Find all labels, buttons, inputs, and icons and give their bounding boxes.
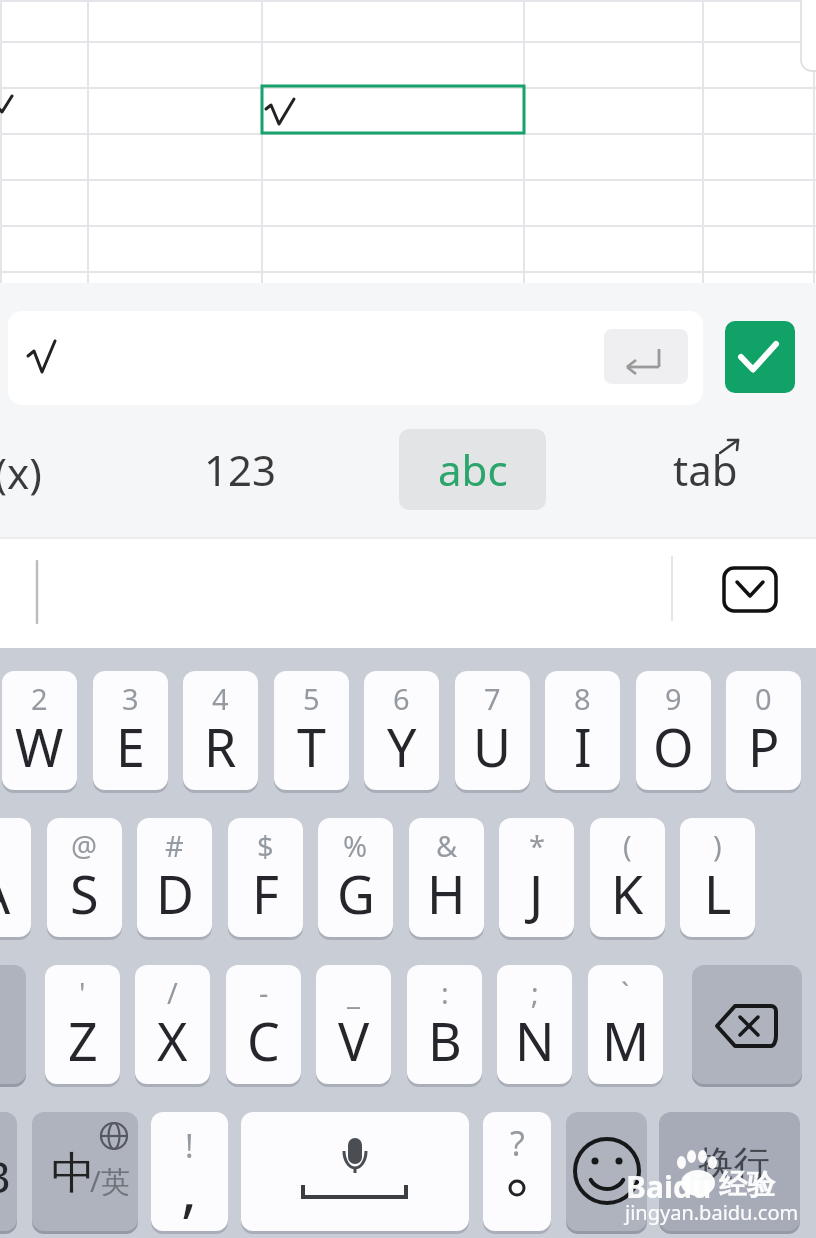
staticText: O xyxy=(653,711,694,782)
button[interactable]: abc xyxy=(399,429,546,510)
button[interactable] xyxy=(566,1112,647,1231)
staticText: C xyxy=(247,1005,280,1076)
staticText: : xyxy=(441,973,449,1012)
button[interactable]: : xyxy=(407,965,482,1084)
button[interactable]: _ xyxy=(316,965,391,1084)
button[interactable]: 6 xyxy=(364,671,439,790)
staticText: Baidu xyxy=(626,1166,712,1207)
staticText: f(x) xyxy=(0,444,42,501)
staticText: 9 xyxy=(665,679,682,718)
button[interactable] xyxy=(724,568,776,611)
button[interactable]: 8 xyxy=(545,671,620,790)
button[interactable]: ) xyxy=(680,818,755,937)
staticText: , xyxy=(181,1147,198,1229)
button[interactable] xyxy=(8,311,703,405)
staticText: Z xyxy=(68,1005,98,1076)
staticText: J xyxy=(529,858,544,929)
button[interactable]: 换行 xyxy=(659,1112,800,1231)
button[interactable] xyxy=(241,1112,469,1231)
button[interactable]: 123 xyxy=(190,430,290,509)
staticText: & xyxy=(436,826,458,865)
staticText: ( xyxy=(623,826,632,865)
staticText: # xyxy=(165,826,184,865)
staticText: N xyxy=(515,1005,555,1076)
staticText: 5 xyxy=(303,679,320,718)
staticText: ) xyxy=(713,826,722,865)
staticText: - xyxy=(259,973,269,1012)
staticText: /英 xyxy=(90,1161,130,1201)
staticText: ` xyxy=(621,973,630,1012)
staticText: X xyxy=(157,1005,188,1076)
staticText: Y xyxy=(387,711,417,782)
staticText: K xyxy=(611,858,644,929)
staticText: ? xyxy=(510,1120,525,1166)
staticText: tab xyxy=(673,441,738,498)
staticText: F xyxy=(252,858,279,929)
staticText: ' xyxy=(79,973,86,1012)
staticText: T xyxy=(297,711,326,782)
staticText: ! xyxy=(185,1124,194,1168)
staticText: ; xyxy=(531,973,539,1012)
staticText: abc xyxy=(438,441,508,498)
button[interactable]: 9 xyxy=(636,671,711,790)
button[interactable] xyxy=(725,321,795,393)
button[interactable]: % xyxy=(318,818,393,937)
button[interactable]: @ xyxy=(47,818,122,937)
staticText: W xyxy=(15,711,64,782)
button[interactable]: / xyxy=(135,965,210,1084)
staticText: 经验 xyxy=(719,1167,775,1202)
button[interactable]: ? xyxy=(483,1112,551,1231)
button[interactable]: 7 xyxy=(455,671,530,790)
staticText: R xyxy=(204,711,237,782)
staticText: jingyan.baidu.com xyxy=(625,1199,799,1226)
button[interactable]: 中 xyxy=(32,1112,138,1231)
staticText: M xyxy=(602,1005,650,1076)
staticText: G xyxy=(337,858,375,929)
button[interactable]: 4 xyxy=(183,671,258,790)
staticText: 6 xyxy=(393,679,410,718)
button[interactable]: - xyxy=(226,965,301,1084)
staticText: B xyxy=(0,1146,11,1206)
staticText: V xyxy=(338,1005,370,1076)
button[interactable]: ` xyxy=(588,965,663,1084)
staticText: I xyxy=(574,711,592,782)
button[interactable]: A xyxy=(0,818,31,937)
staticText: 8 xyxy=(574,679,591,718)
staticText: 0 xyxy=(755,679,772,718)
staticText: @ xyxy=(71,826,98,865)
staticText: / xyxy=(167,973,178,1012)
staticText: 换行 xyxy=(698,1141,770,1186)
button[interactable]: # xyxy=(137,818,212,937)
button[interactable] xyxy=(692,965,802,1084)
button[interactable]: ! xyxy=(151,1112,228,1231)
staticText: D xyxy=(156,858,194,929)
staticText: 2 xyxy=(31,679,48,718)
staticText: L xyxy=(704,858,732,929)
button[interactable]: * xyxy=(499,818,574,937)
button[interactable]: ' xyxy=(45,965,120,1084)
button[interactable]: ; xyxy=(497,965,572,1084)
button[interactable]: 5 xyxy=(274,671,349,790)
button[interactable]: tab xyxy=(655,430,755,509)
staticText: 中 xyxy=(51,1146,95,1201)
staticText: B xyxy=(428,1005,462,1076)
staticText: $ xyxy=(257,826,274,865)
staticText: % xyxy=(343,826,368,865)
button[interactable]: f(x) xyxy=(0,429,60,510)
button[interactable]: ( xyxy=(590,818,665,937)
staticText: 4 xyxy=(212,679,229,718)
staticText: _ xyxy=(347,973,360,1012)
button[interactable]: $ xyxy=(228,818,303,937)
staticText: S xyxy=(70,858,99,929)
button[interactable] xyxy=(0,965,26,1084)
button[interactable]: 0 xyxy=(726,671,801,790)
staticText: A xyxy=(0,858,11,929)
button[interactable]: B xyxy=(0,1112,17,1231)
button[interactable] xyxy=(604,329,688,384)
button[interactable]: & xyxy=(409,818,484,937)
button[interactable]: 2 xyxy=(2,671,77,790)
button[interactable]: 3 xyxy=(93,671,168,790)
staticText: 123 xyxy=(204,441,277,498)
staticText: P xyxy=(748,711,780,782)
staticText: * xyxy=(529,826,545,865)
